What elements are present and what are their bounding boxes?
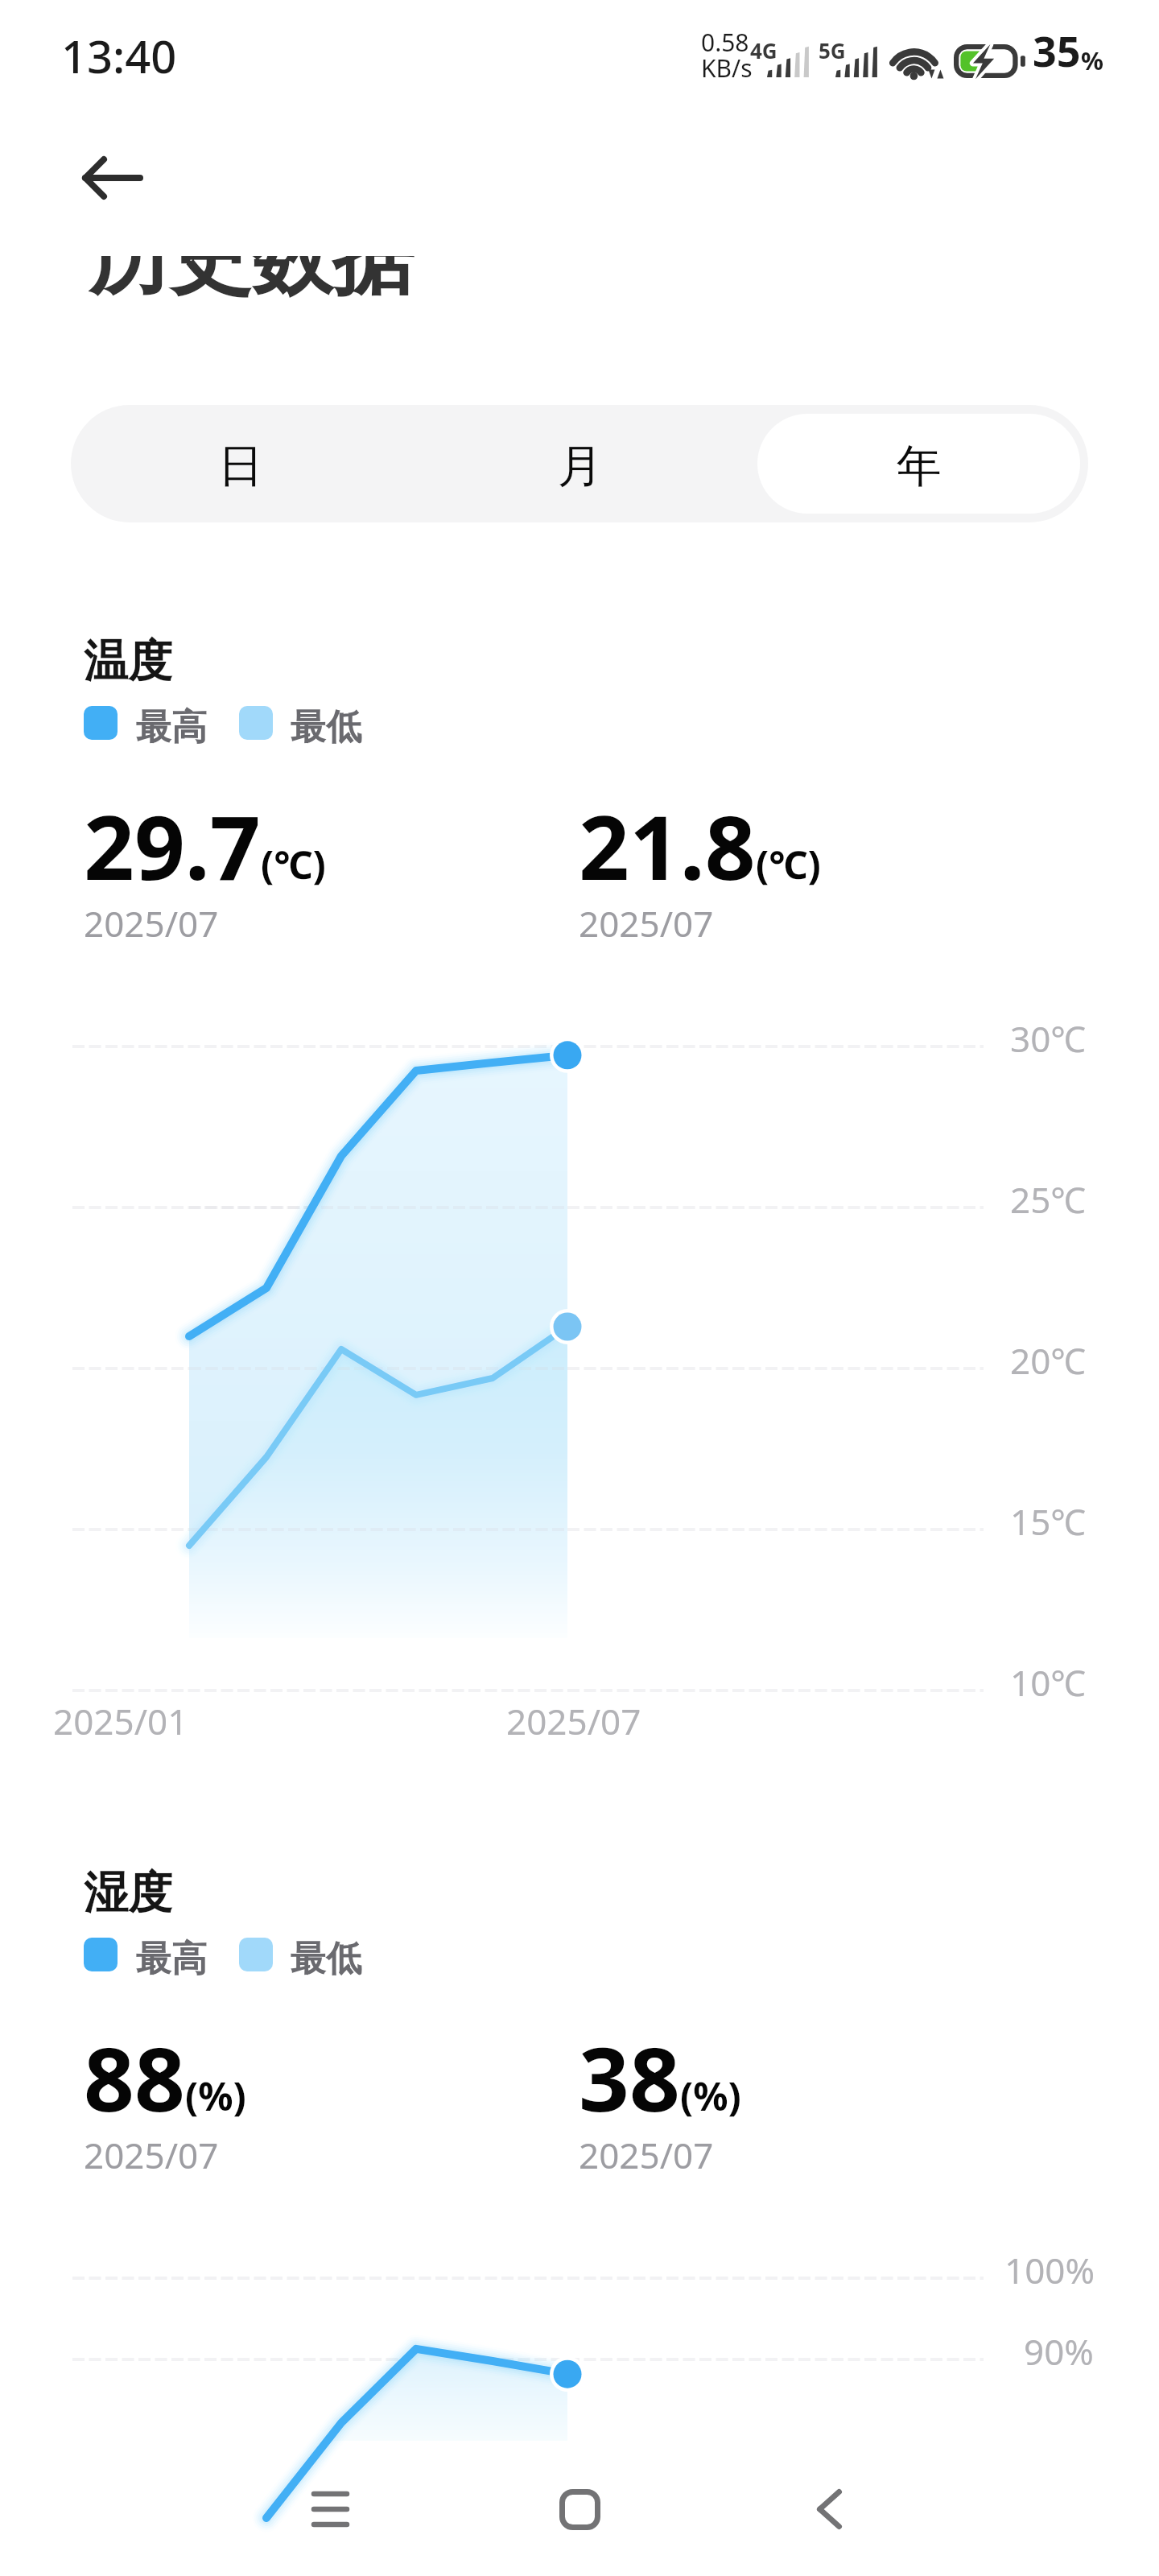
staticText: 最低 — [291, 705, 361, 749]
staticText: 88 — [84, 2017, 185, 2137]
button[interactable]: 年 — [757, 414, 1080, 514]
staticText: KB/s — [701, 52, 753, 85]
staticText: 最低 — [291, 1937, 361, 1981]
staticText: 21.8 — [579, 785, 756, 906]
staticText: 10℃ — [1010, 1658, 1087, 1707]
staticText: 35 — [1033, 22, 1081, 79]
button[interactable]: 日 — [79, 414, 402, 514]
staticText: (%) — [185, 2070, 246, 2122]
staticText: 20℃ — [1010, 1336, 1087, 1385]
staticText: 30℃ — [1010, 1014, 1087, 1063]
staticText: 4G — [750, 36, 777, 64]
button[interactable]: Home — [523, 2453, 636, 2566]
staticText: 月 — [558, 438, 603, 495]
staticText: 最高 — [136, 1937, 207, 1981]
staticText: 2025/07 — [579, 2131, 714, 2179]
button[interactable]: Back — [773, 2453, 885, 2566]
staticText: 历史数据 — [89, 256, 414, 298]
staticText: 2025/01 — [53, 1697, 188, 1745]
staticText: 13:40 — [61, 25, 177, 86]
staticText: (℃) — [261, 838, 326, 890]
staticText: 日 — [218, 438, 263, 495]
staticText: 2025/07 — [506, 1697, 641, 1745]
button[interactable]: Back — [64, 130, 161, 226]
staticText: 15℃ — [1010, 1497, 1087, 1546]
staticText: 100% — [1004, 2246, 1095, 2294]
staticText: 温度 — [84, 634, 172, 689]
staticText: 最高 — [136, 705, 207, 749]
button[interactable]: Recent apps — [274, 2453, 386, 2566]
staticText: 25℃ — [1010, 1175, 1087, 1224]
staticText: 2025/07 — [84, 899, 219, 947]
staticText: 2025/07 — [84, 2131, 219, 2179]
staticText: 5G — [819, 36, 846, 64]
staticText: 90% — [1024, 2327, 1094, 2376]
staticText: % — [1081, 43, 1103, 77]
button[interactable]: 月 — [419, 414, 741, 514]
staticText: 0.58 — [701, 26, 749, 59]
staticText: (%) — [680, 2070, 741, 2122]
staticText: 29.7 — [84, 785, 261, 906]
staticText: 年 — [897, 438, 942, 495]
staticText: (℃) — [756, 838, 821, 890]
staticText: 2025/07 — [579, 899, 714, 947]
staticText: 38 — [579, 2017, 680, 2137]
staticText: 湿度 — [84, 1865, 172, 1921]
